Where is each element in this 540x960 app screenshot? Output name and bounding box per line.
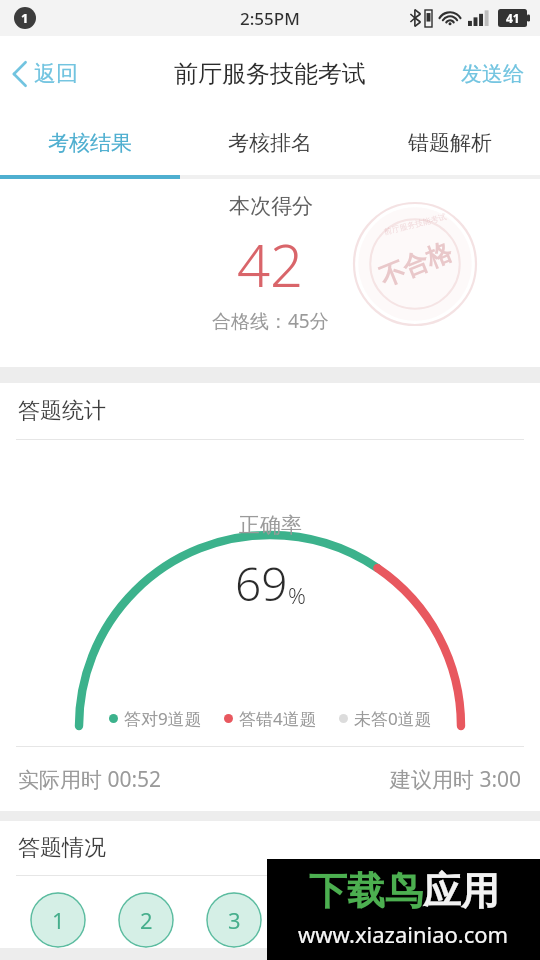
button[interactable]: 3 [206, 892, 262, 948]
staticText: 3 [228, 905, 241, 935]
staticText: 建议用时 3:00 [390, 765, 522, 794]
staticText: 考核排名 [228, 130, 312, 156]
staticText: 5 [404, 905, 417, 935]
button[interactable]: 返回 [0, 36, 92, 111]
staticText: 答错4道题 [239, 707, 317, 730]
button[interactable]: 错题解析 [360, 111, 540, 175]
staticText: 返回 [34, 60, 78, 88]
staticText: 考核结果 [48, 130, 132, 156]
staticText: 4 [316, 905, 329, 935]
button[interactable]: 2 [118, 892, 174, 948]
staticText: 42 [237, 225, 304, 304]
staticText: 2 [140, 905, 153, 935]
staticText: 发送给 [461, 61, 524, 87]
staticText: 前厅服务技能考试 [383, 211, 447, 237]
staticText: 未答0道题 [354, 707, 432, 730]
staticText: 本次得分 [229, 193, 313, 219]
staticText: 下载鸟 [309, 867, 423, 915]
button[interactable]: 发送给 [445, 36, 540, 111]
staticText: www.xiazainiao.com [298, 919, 509, 949]
staticText: 正确率 [239, 512, 302, 538]
staticText: 合格线：45分 [212, 308, 329, 334]
staticText: % [288, 580, 306, 610]
staticText: 1 [21, 9, 29, 27]
button[interactable]: 1 [30, 892, 86, 948]
button[interactable]: 5 [382, 892, 438, 948]
staticText: 前厅服务技能考试 [174, 59, 366, 89]
staticText: 实际用时 00:52 [18, 765, 162, 794]
staticText: 错题解析 [408, 130, 492, 156]
button[interactable]: 考核排名 [180, 111, 360, 175]
staticText: 2:55PM [240, 7, 300, 30]
staticText: 1 [52, 905, 65, 935]
staticText: 答题统计 [18, 397, 106, 425]
staticText: 答题情况 [18, 834, 106, 862]
staticText: 应用 [423, 867, 499, 915]
staticText: 41 [506, 10, 520, 26]
button[interactable]: 4 [294, 892, 350, 948]
staticText: 69 [235, 552, 288, 615]
staticText: 答对9道题 [124, 707, 202, 730]
staticText: 不合格 [375, 236, 456, 293]
button[interactable]: 考核结果 [0, 111, 180, 175]
